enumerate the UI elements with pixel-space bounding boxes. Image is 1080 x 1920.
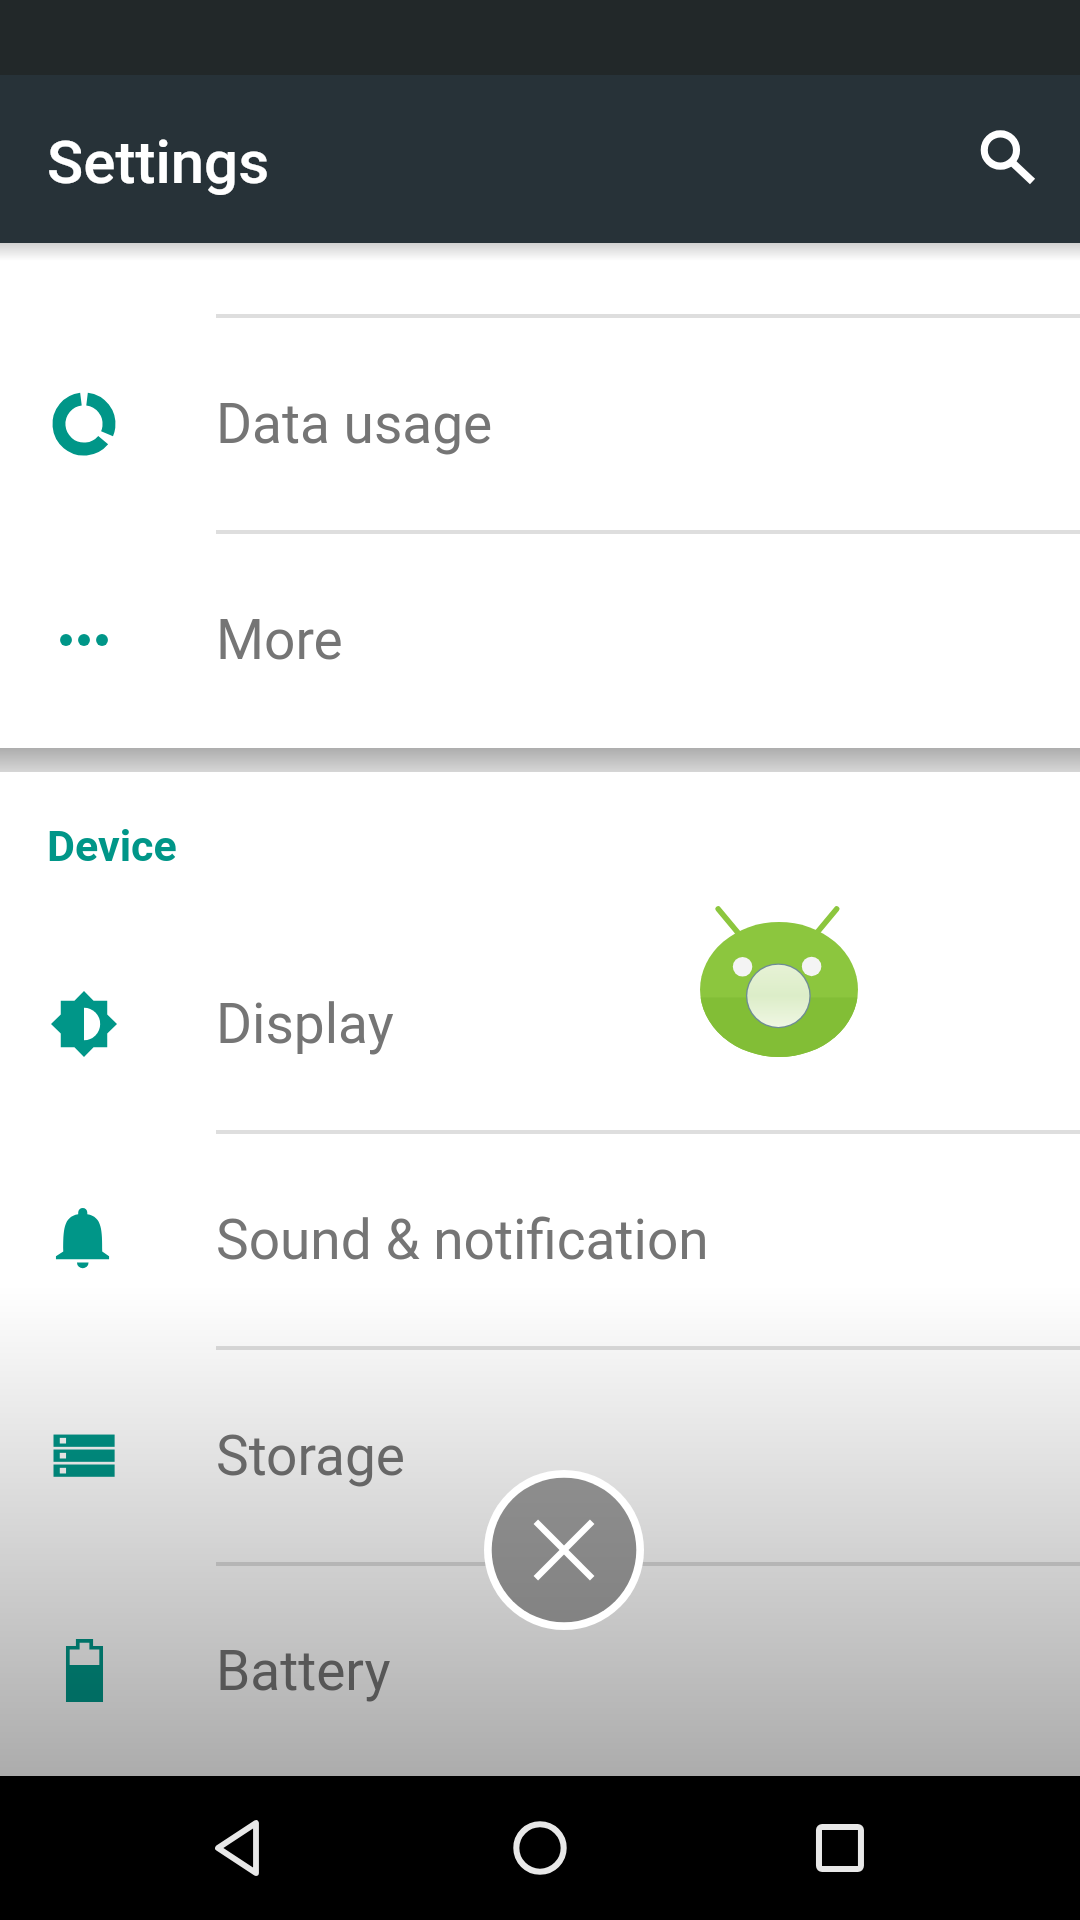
- staticText: Display: [216, 992, 394, 1056]
- button[interactable]: Home: [390, 1776, 690, 1920]
- button[interactable]: Sound & notification: [0, 1134, 1080, 1346]
- staticText: Storage: [216, 1424, 406, 1488]
- button[interactable]: Battery: [0, 1566, 1080, 1776]
- button[interactable]: Close: [484, 1470, 644, 1630]
- staticText: Settings: [47, 127, 270, 197]
- button[interactable]: Data usage: [0, 318, 1080, 530]
- button[interactable]: Search: [952, 111, 1048, 207]
- staticText: Data usage: [216, 392, 493, 456]
- button[interactable]: Back: [90, 1776, 390, 1920]
- button[interactable]: More: [0, 534, 1080, 746]
- button[interactable]: Recent apps: [690, 1776, 990, 1920]
- staticText: More: [216, 608, 343, 672]
- button[interactable]: Storage: [0, 1350, 1080, 1562]
- staticText: Device: [47, 821, 177, 871]
- button[interactable]: Display: [0, 918, 1080, 1130]
- staticText: Sound & notification: [216, 1208, 709, 1272]
- staticText: Battery: [216, 1639, 391, 1703]
